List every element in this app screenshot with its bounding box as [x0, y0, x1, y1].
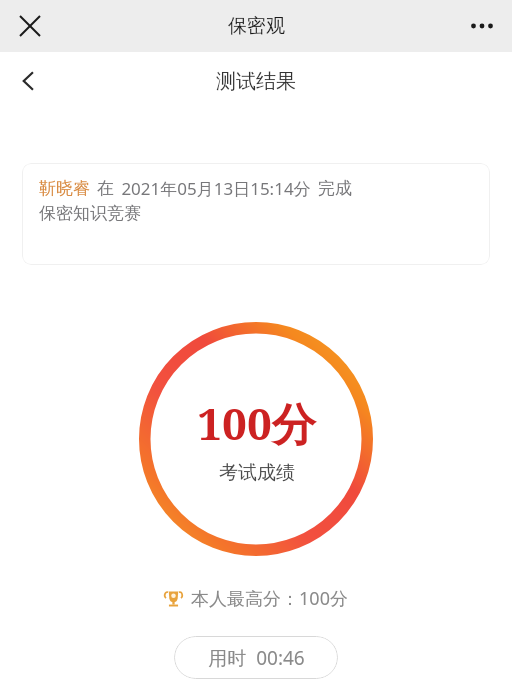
button[interactable]: Close [8, 4, 52, 48]
staticText: 考试成绩 [219, 461, 295, 485]
button[interactable]: 用时 00:46 [174, 636, 338, 679]
button[interactable]: Back [6, 58, 52, 104]
staticText: 100分 [197, 393, 316, 453]
staticText: 测试结果 [216, 69, 296, 94]
button[interactable]: 靳晓睿 [22, 163, 490, 265]
staticText: 用时 00:46 [208, 645, 305, 671]
button[interactable]: More options [460, 4, 504, 48]
staticText: 本人最高分：100分 [191, 586, 348, 611]
staticText: 2021年05月13日15:14分 [121, 177, 311, 200]
staticText: 在 [97, 178, 114, 199]
staticText: 靳晓睿 [39, 178, 90, 199]
staticText: 完成 [318, 178, 352, 199]
staticText: 保密观 [228, 14, 285, 38]
staticText: 保密知识竞赛 [39, 203, 141, 224]
